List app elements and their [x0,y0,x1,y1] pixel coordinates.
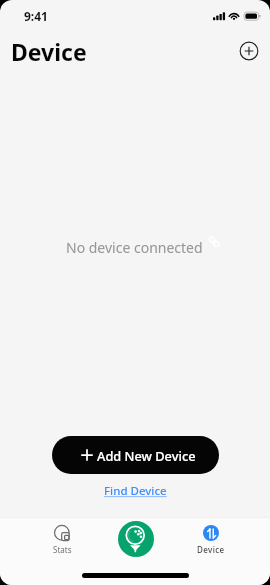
button[interactable]: Add device [239,41,259,61]
staticText: Stats [53,544,72,555]
button[interactable]: Device [193,525,229,555]
button[interactable]: Find Device [104,483,167,499]
button[interactable]: Golf [118,521,154,557]
staticText: 9:41 [24,8,48,24]
staticText: Device [11,36,87,67]
button[interactable]: Stats [44,525,80,555]
staticText: Device [197,544,225,555]
staticText: No device connected [66,238,203,257]
staticText: Add New Device [97,447,196,464]
button[interactable]: Add New Device [52,436,219,474]
